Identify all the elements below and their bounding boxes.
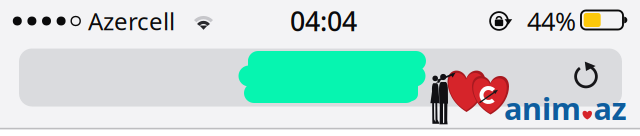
staticText: 44% xyxy=(527,4,576,38)
staticText: Azercell xyxy=(88,5,175,37)
button[interactable]: Reload xyxy=(564,53,608,97)
staticText: 04:04 xyxy=(290,3,357,39)
staticText: anim xyxy=(504,88,581,128)
staticText: az xyxy=(593,88,626,128)
